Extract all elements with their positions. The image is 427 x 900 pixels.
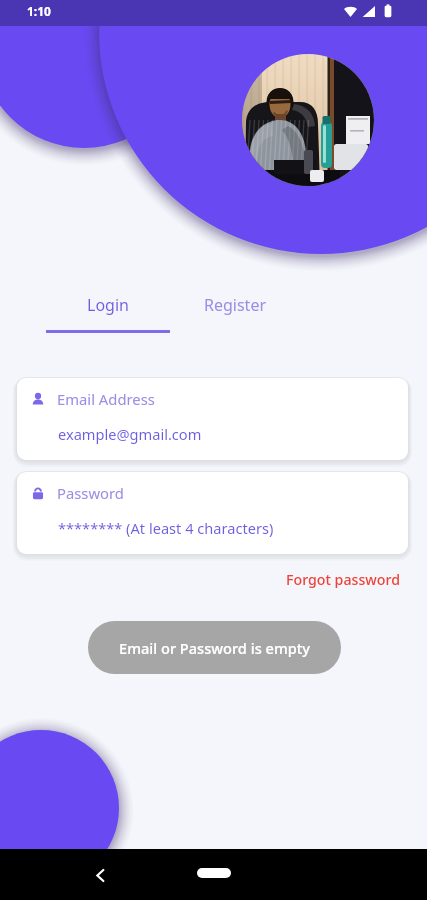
- staticText: Password: [57, 483, 124, 503]
- button[interactable]: Login: [46, 294, 170, 316]
- staticText: Email Address: [57, 389, 155, 409]
- staticText: 1:10: [27, 3, 51, 19]
- button[interactable]: Forgot password: [276, 566, 410, 593]
- button[interactable]: Register: [180, 294, 290, 316]
- button[interactable]: Home: [197, 868, 231, 878]
- button[interactable]: Password: [17, 472, 408, 554]
- staticText: Login: [87, 294, 129, 316]
- staticText: ******** (At least 4 characters): [58, 518, 274, 538]
- staticText: Forgot password: [286, 570, 400, 589]
- button[interactable]: Back: [86, 861, 114, 889]
- button[interactable]: Email or Password is empty: [88, 621, 341, 674]
- staticText: Register: [204, 294, 267, 316]
- staticText: Email or Password is empty: [119, 638, 311, 658]
- button[interactable]: Email Address: [17, 378, 408, 460]
- staticText: example@gmail.com: [58, 424, 202, 444]
